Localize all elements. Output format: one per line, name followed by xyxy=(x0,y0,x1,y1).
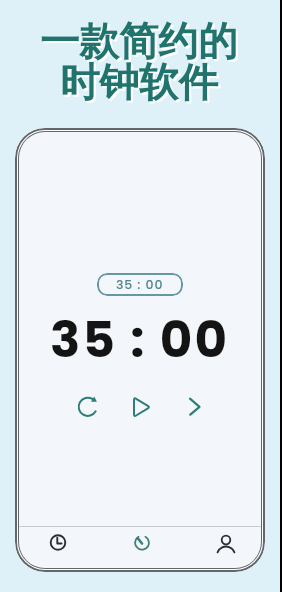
button[interactable]: 35 : 00 xyxy=(97,273,183,296)
staticText: 时钟软件 xyxy=(62,60,220,110)
button[interactable] xyxy=(122,523,162,563)
button[interactable] xyxy=(183,391,215,423)
button[interactable] xyxy=(72,391,104,423)
button[interactable] xyxy=(126,391,158,423)
button[interactable] xyxy=(38,523,78,563)
staticText: 时钟软件 xyxy=(60,58,218,108)
button[interactable] xyxy=(206,523,246,563)
staticText: 35 : 00 xyxy=(116,276,164,293)
staticText: 一款简约的 xyxy=(40,17,238,67)
staticText: 35 : 00 xyxy=(50,305,230,375)
staticText: 一款简约的 xyxy=(42,19,240,69)
